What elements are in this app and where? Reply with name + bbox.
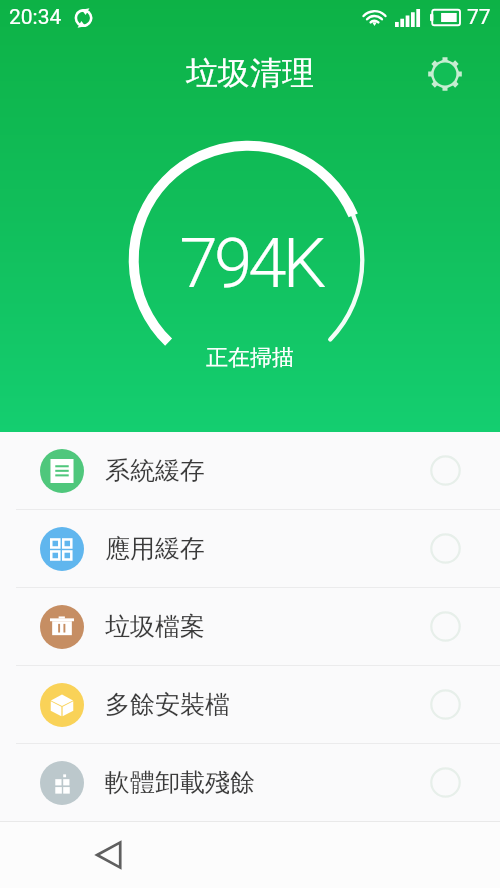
button[interactable]: 應用緩存	[0, 510, 500, 588]
staticText: 正在掃描	[206, 344, 294, 372]
button[interactable]: Back	[84, 830, 134, 880]
button[interactable]: 垃圾檔案	[0, 588, 500, 666]
button[interactable]: 系統緩存	[0, 432, 500, 510]
button[interactable]: 軟體卸載殘餘	[0, 744, 500, 822]
staticText: 20:34	[9, 5, 62, 30]
staticText: 垃圾清理	[186, 53, 314, 93]
staticText: 應用緩存	[105, 533, 205, 564]
button[interactable]: Settings	[422, 51, 468, 97]
staticText: 多餘安裝檔	[105, 689, 230, 720]
staticText: 794K	[179, 223, 323, 304]
staticText: 垃圾檔案	[105, 611, 205, 642]
staticText: 系統緩存	[105, 455, 205, 486]
button[interactable]: 多餘安裝檔	[0, 666, 500, 744]
staticText: 77	[467, 5, 491, 30]
staticText: 軟體卸載殘餘	[105, 767, 255, 798]
